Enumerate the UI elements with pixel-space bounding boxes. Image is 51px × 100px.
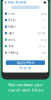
button[interactable]: Year (3, 43, 48, 49)
staticText: Yes (42, 51, 46, 54)
staticText: Price (8, 12, 15, 15)
staticText: House (37, 31, 46, 35)
staticText: Beds (8, 18, 15, 22)
button[interactable]: Beds (3, 17, 48, 23)
button[interactable]: Apply Filters (6, 60, 45, 65)
staticText: Filter Results (8, 1, 26, 4)
staticText: Area (8, 38, 14, 41)
button[interactable]: Clear filters (44, 0, 48, 5)
button[interactable]: Parking (3, 49, 48, 56)
staticText: Year (8, 44, 13, 48)
staticText: 2+ (42, 18, 46, 22)
staticText: Narrow down your search with filters (7, 82, 43, 93)
button[interactable]: Baths (3, 23, 48, 30)
button[interactable]: Filter Results (3, 0, 27, 5)
button[interactable]: Reset all (19, 66, 31, 70)
staticText: 1+ (42, 25, 46, 28)
staticText: Apply Filters (17, 61, 34, 64)
button[interactable]: Type (3, 30, 48, 36)
staticText: Reset all (19, 66, 31, 70)
staticText: Any (41, 38, 46, 41)
button[interactable]: Price (3, 10, 48, 17)
staticText: Type (8, 31, 14, 35)
staticText: Parking (8, 51, 18, 54)
staticText: Baths (8, 25, 15, 28)
staticText: 2010 (38, 44, 46, 48)
staticText: Any (41, 12, 46, 15)
button[interactable]: Area (3, 36, 48, 43)
